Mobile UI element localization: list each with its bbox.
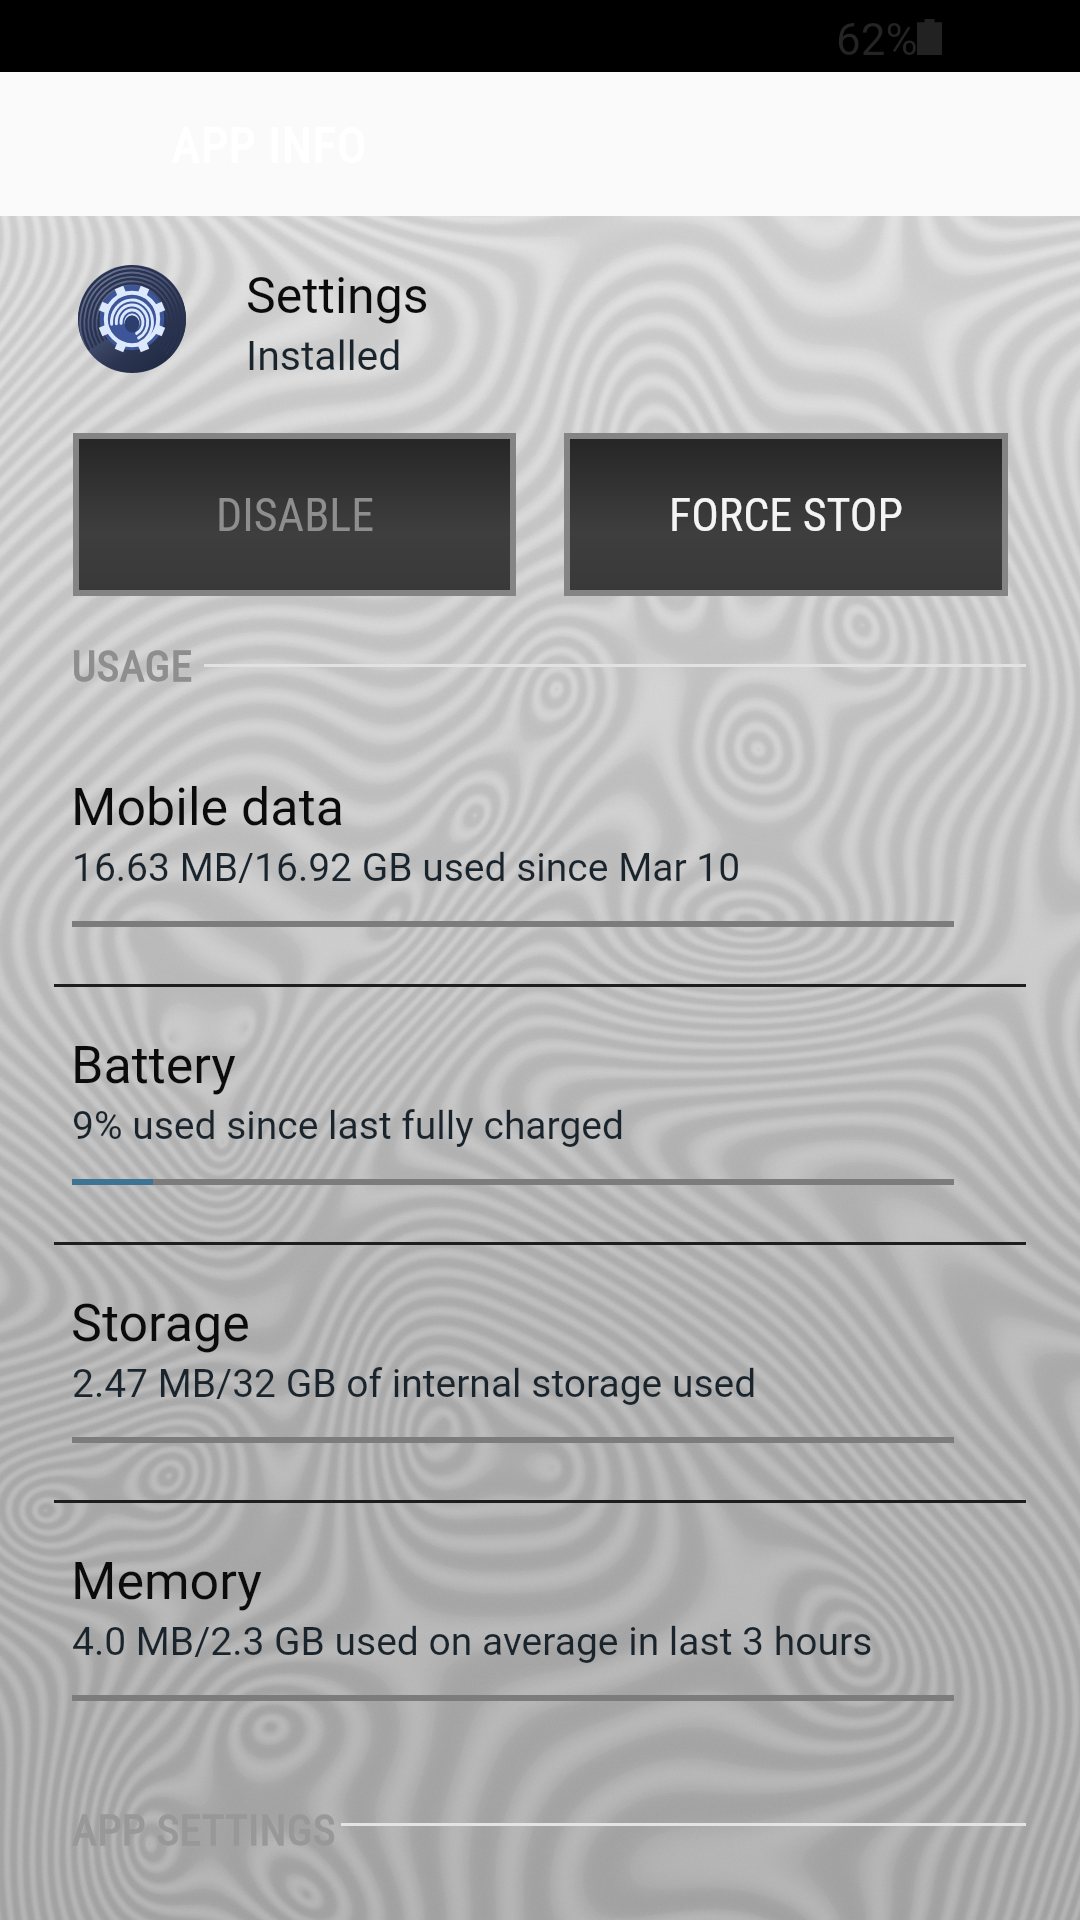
staticText: Installed [246, 332, 402, 380]
staticText: 16.63 MB/16.92 GB used since Mar 10 [72, 845, 741, 891]
staticText: FORCE STOP [669, 488, 903, 542]
staticText: DISABLE [216, 488, 374, 542]
staticText: 62% [836, 14, 918, 66]
staticText: 4.0 MB/2.3 GB used on average in last 3 … [72, 1619, 873, 1665]
staticText: Battery [71, 1035, 236, 1096]
button[interactable]: Memory [0, 1520, 1080, 1758]
button[interactable]: Storage [0, 1262, 1080, 1500]
staticText: Mobile data [71, 777, 344, 838]
button[interactable]: Settings app icon [0, 216, 1080, 421]
button[interactable]: DISABLE [79, 439, 510, 590]
staticText: Settings [246, 267, 429, 326]
staticText: USAGE [72, 641, 193, 691]
button[interactable]: Mobile data [0, 746, 1080, 984]
staticText: 2.47 MB/32 GB of internal storage used [72, 1361, 757, 1407]
staticText: Storage [71, 1293, 250, 1354]
button[interactable]: Battery [0, 1004, 1080, 1242]
button[interactable]: FORCE STOP [570, 439, 1002, 590]
staticText: 9% used since last fully charged [72, 1103, 624, 1149]
other: Settings app icon [78, 265, 186, 373]
staticText: APP SETTINGS [72, 1805, 336, 1855]
staticText: Memory [71, 1551, 262, 1612]
